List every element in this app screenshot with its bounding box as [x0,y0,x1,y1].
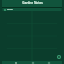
staticText: Seeds [7,8,13,11]
button[interactable]: List [30,61,35,64]
button[interactable]: Add note [57,55,61,59]
button[interactable]: Home [13,61,18,64]
button[interactable]: Leaf [3,8,61,11]
staticText: Garden Notes [22,1,43,5]
button[interactable]: Settings [46,61,51,64]
button[interactable]: Garden Notes [2,0,62,7]
